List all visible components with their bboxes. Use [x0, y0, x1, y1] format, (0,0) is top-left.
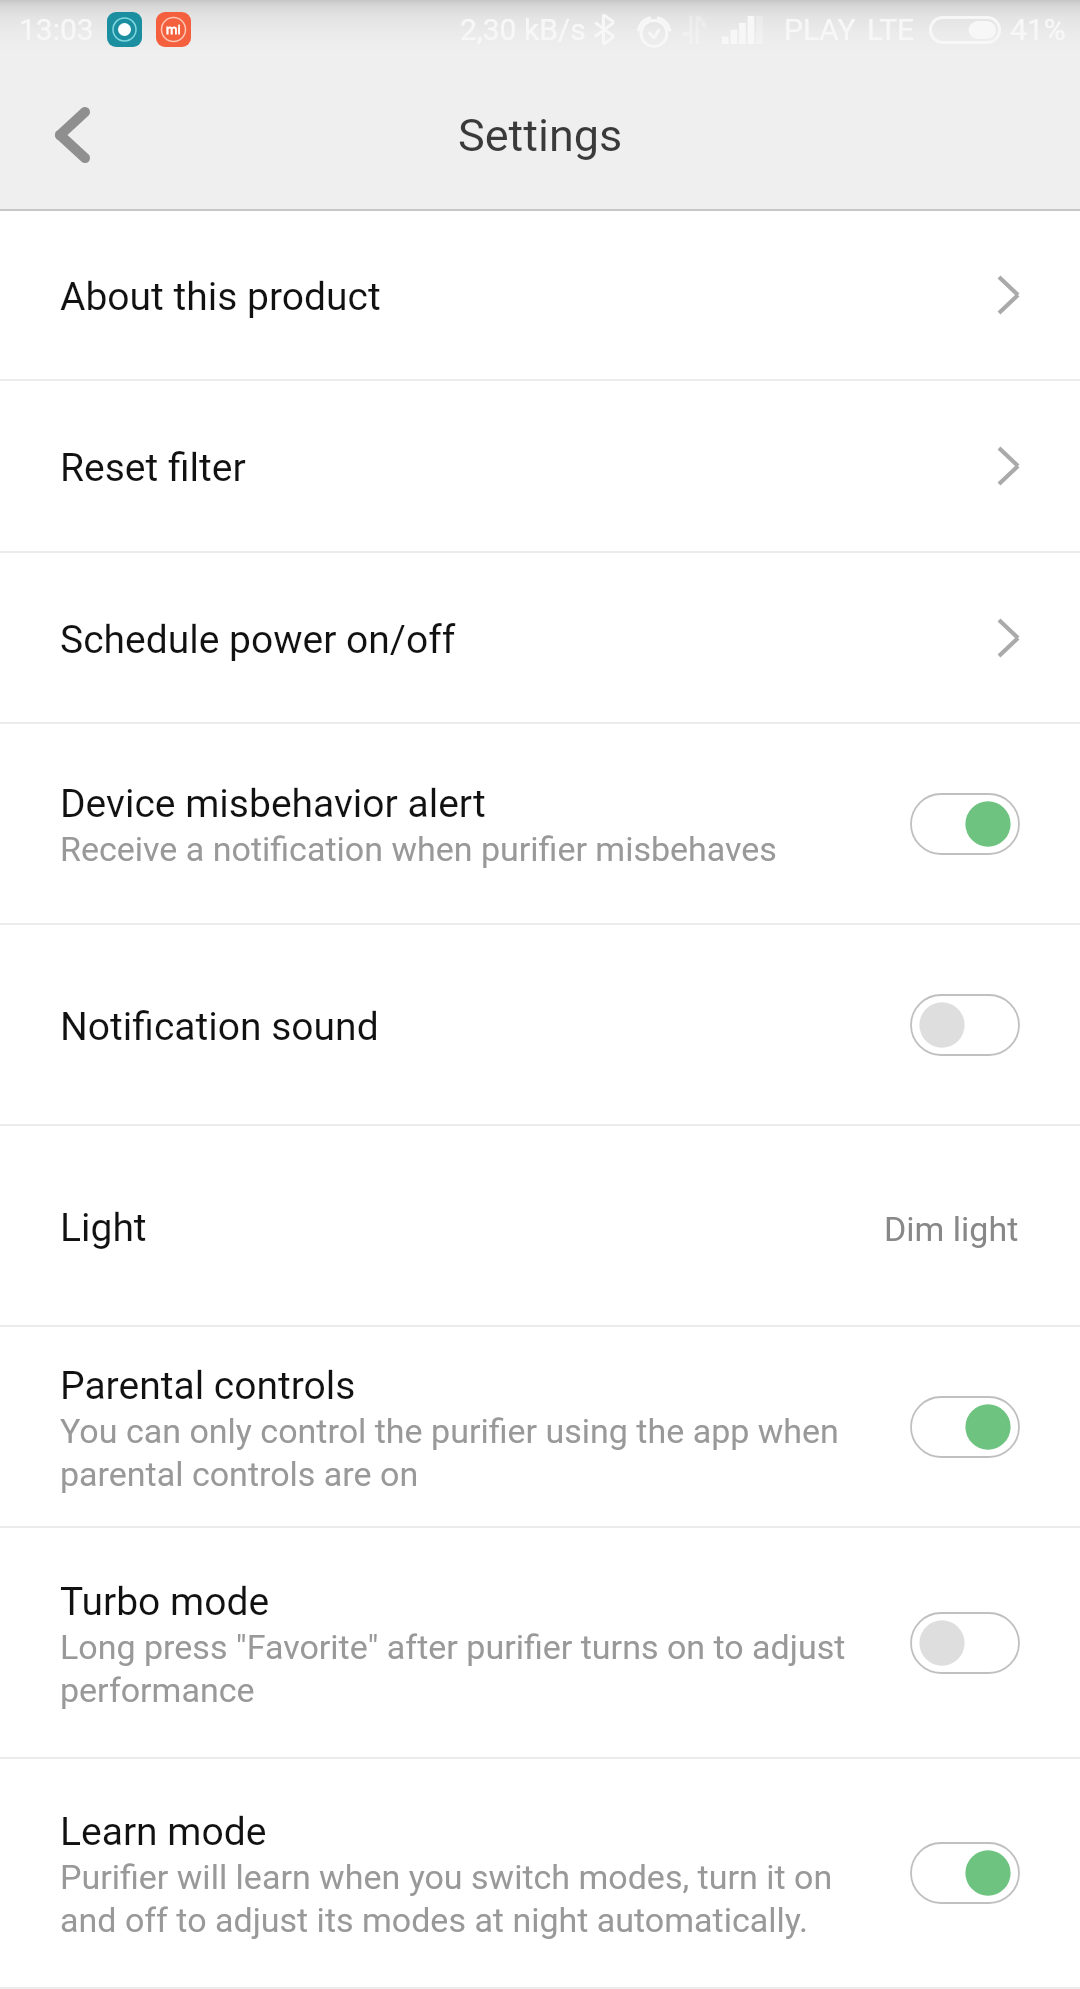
staticText: PLAY	[784, 12, 856, 47]
button[interactable]: Turbo mode	[0, 1528, 1080, 1757]
button[interactable]: Switch off	[910, 1612, 1020, 1674]
button[interactable]: Notification sound	[0, 925, 1080, 1124]
staticText: Reset filter	[60, 445, 246, 491]
button[interactable]: Switch on	[910, 1396, 1020, 1458]
button[interactable]: Back	[0, 54, 140, 211]
staticText: Device misbehavior alert	[60, 781, 486, 827]
button[interactable]: Learn mode	[0, 1759, 1080, 1987]
staticText: Dim light	[884, 1205, 1019, 1251]
staticText: Parental controls	[60, 1363, 356, 1409]
button[interactable]: Reset filter	[0, 381, 1080, 551]
staticText: Purifier will learn when you switch mode…	[60, 1855, 860, 1941]
button[interactable]: Device misbehavior alert	[0, 724, 1080, 923]
staticText: Turbo mode	[60, 1579, 270, 1625]
button[interactable]: Parental controls	[0, 1327, 1080, 1526]
button[interactable]: About this product	[0, 211, 1080, 379]
staticText: Light	[60, 1205, 147, 1251]
button[interactable]: Schedule power on/off	[0, 553, 1080, 722]
staticText: You can only control the purifier using …	[60, 1409, 860, 1495]
staticText: LTE	[867, 12, 915, 47]
button[interactable]: Switch off	[910, 994, 1020, 1056]
staticText: 2,30 kB/s	[460, 12, 586, 47]
staticText: Settings	[458, 109, 623, 162]
button[interactable]: Switch on	[910, 1842, 1020, 1904]
staticText: 13:03	[19, 12, 94, 47]
button[interactable]: Switch on	[910, 793, 1020, 855]
staticText: 41%	[1010, 12, 1066, 47]
staticText: Long press "Favorite" after purifier tur…	[60, 1625, 860, 1711]
button[interactable]: Light	[0, 1126, 1080, 1325]
staticText: Learn mode	[60, 1809, 267, 1855]
staticText: mi	[166, 22, 181, 37]
staticText: Notification sound	[60, 1004, 379, 1050]
staticText: Schedule power on/off	[60, 617, 456, 663]
staticText: Receive a notification when purifier mis…	[60, 827, 777, 870]
staticText: About this product	[60, 274, 381, 320]
